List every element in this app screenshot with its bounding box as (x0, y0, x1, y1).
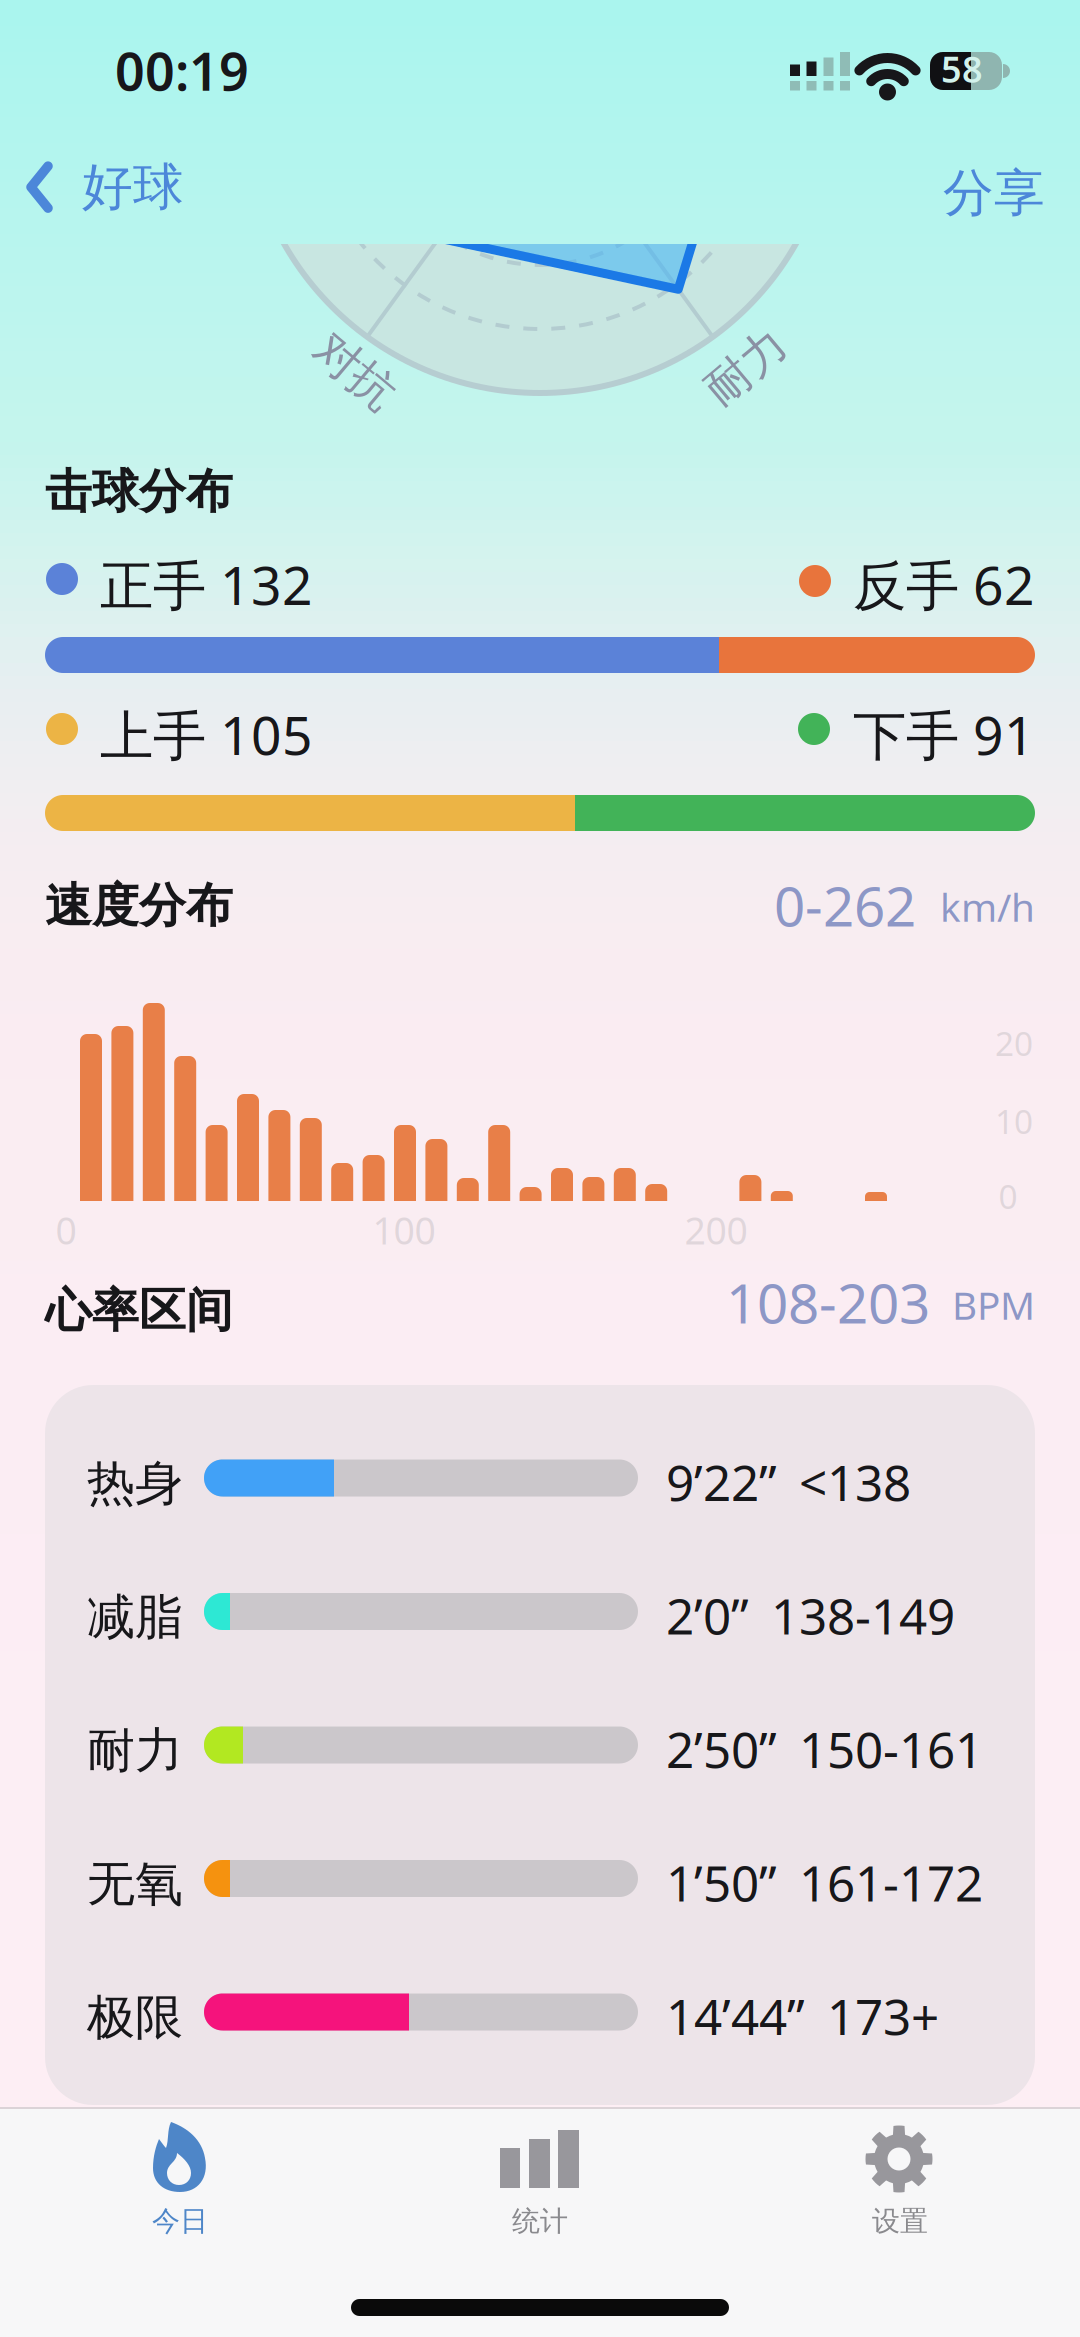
staticText: 173+ (827, 1983, 939, 2048)
staticText: 200 (684, 1205, 747, 1255)
staticText: 2’0’’ (666, 1582, 749, 1648)
staticText: 上手 105 (100, 699, 313, 770)
staticText: 耐力 (87, 1721, 183, 1780)
staticText: 耐力 (701, 339, 791, 395)
staticText: 分享 (943, 162, 1045, 224)
staticText: 对抗 (310, 343, 400, 399)
staticText: 2’50’’ (666, 1716, 777, 1781)
staticText: 击球分布 (45, 463, 233, 520)
button[interactable]: 设置 (770, 2108, 1080, 2337)
staticText: BPM (952, 1279, 1035, 1330)
button[interactable]: 今日 (50, 2108, 1080, 2337)
staticText: 减脂 (87, 1587, 183, 1646)
staticText: 138-149 (771, 1582, 955, 1648)
staticText: 设置 (872, 2204, 928, 2238)
staticText: 9’22’’ (666, 1449, 777, 1514)
button[interactable]: 返回 (28, 156, 184, 218)
staticText: 极限 (87, 1988, 183, 2047)
staticText: 0-262 (774, 869, 916, 942)
button[interactable]: 统计 (410, 2108, 1080, 2337)
staticText: 下手 91 (853, 699, 1035, 770)
staticText: 00:19 (115, 36, 249, 105)
staticText: 1’50’’ (666, 1849, 777, 1915)
staticText: 反手 62 (853, 549, 1035, 620)
staticText: 无氧 (87, 1854, 183, 1913)
staticText: 正手 132 (100, 549, 313, 620)
staticText: 14’44’’ (666, 1983, 805, 2048)
staticText: 统计 (512, 2204, 568, 2238)
staticText: 心率区间 (45, 1282, 233, 1339)
staticText: 161-172 (799, 1849, 983, 1915)
staticText: 108-203 (726, 1266, 930, 1339)
staticText: 100 (372, 1205, 435, 1255)
staticText: <138 (799, 1449, 911, 1514)
staticText: 速度分布 (45, 877, 233, 934)
button[interactable]: 分享 (943, 162, 1045, 224)
staticText: 150-161 (799, 1716, 983, 1781)
staticText: 好球 (82, 156, 184, 218)
staticText: 10 (995, 1099, 1033, 1143)
staticText: 58 (941, 45, 983, 93)
staticText: km/h (940, 881, 1035, 932)
staticText: 今日 (152, 2204, 208, 2238)
staticText: 0 (998, 1174, 1017, 1218)
staticText: 0 (55, 1205, 76, 1255)
staticText: 20 (995, 1021, 1033, 1065)
staticText: 热身 (87, 1454, 183, 1513)
